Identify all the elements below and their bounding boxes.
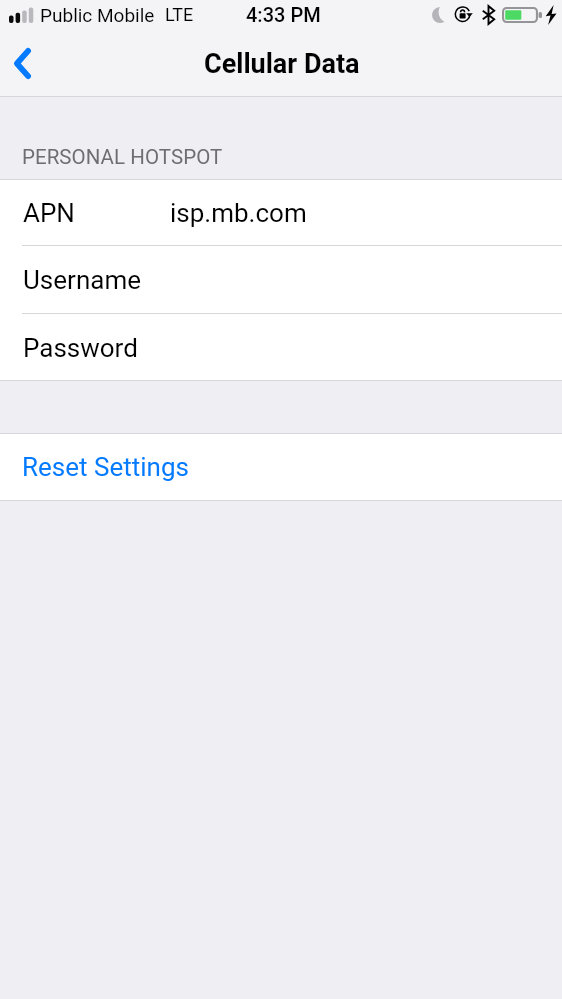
button[interactable]: Password	[0, 313, 562, 380]
staticText: APN	[23, 198, 75, 228]
staticText: Password	[23, 333, 138, 363]
other: Cellular signal strength	[9, 7, 34, 23]
staticText: LTE	[165, 4, 194, 25]
staticText: Username	[23, 265, 141, 295]
button[interactable]: Reset Settings	[0, 433, 562, 500]
staticText: Public Mobile	[40, 4, 155, 26]
button[interactable]: Username	[0, 245, 562, 313]
other: Portrait orientation lock	[455, 6, 474, 23]
other: Battery charging	[502, 7, 543, 24]
button[interactable]: APN	[0, 179, 562, 245]
staticText: isp.mb.com	[170, 198, 307, 228]
other: Do Not Disturb	[431, 6, 449, 24]
staticText: 4:33 PM	[246, 3, 321, 26]
button[interactable]: Back	[0, 32, 48, 96]
staticText: PERSONAL HOTSPOT	[22, 145, 223, 169]
staticText: Cellular Data	[204, 48, 360, 80]
staticText: Reset Settings	[22, 452, 189, 482]
other: Bluetooth on	[482, 5, 495, 25]
